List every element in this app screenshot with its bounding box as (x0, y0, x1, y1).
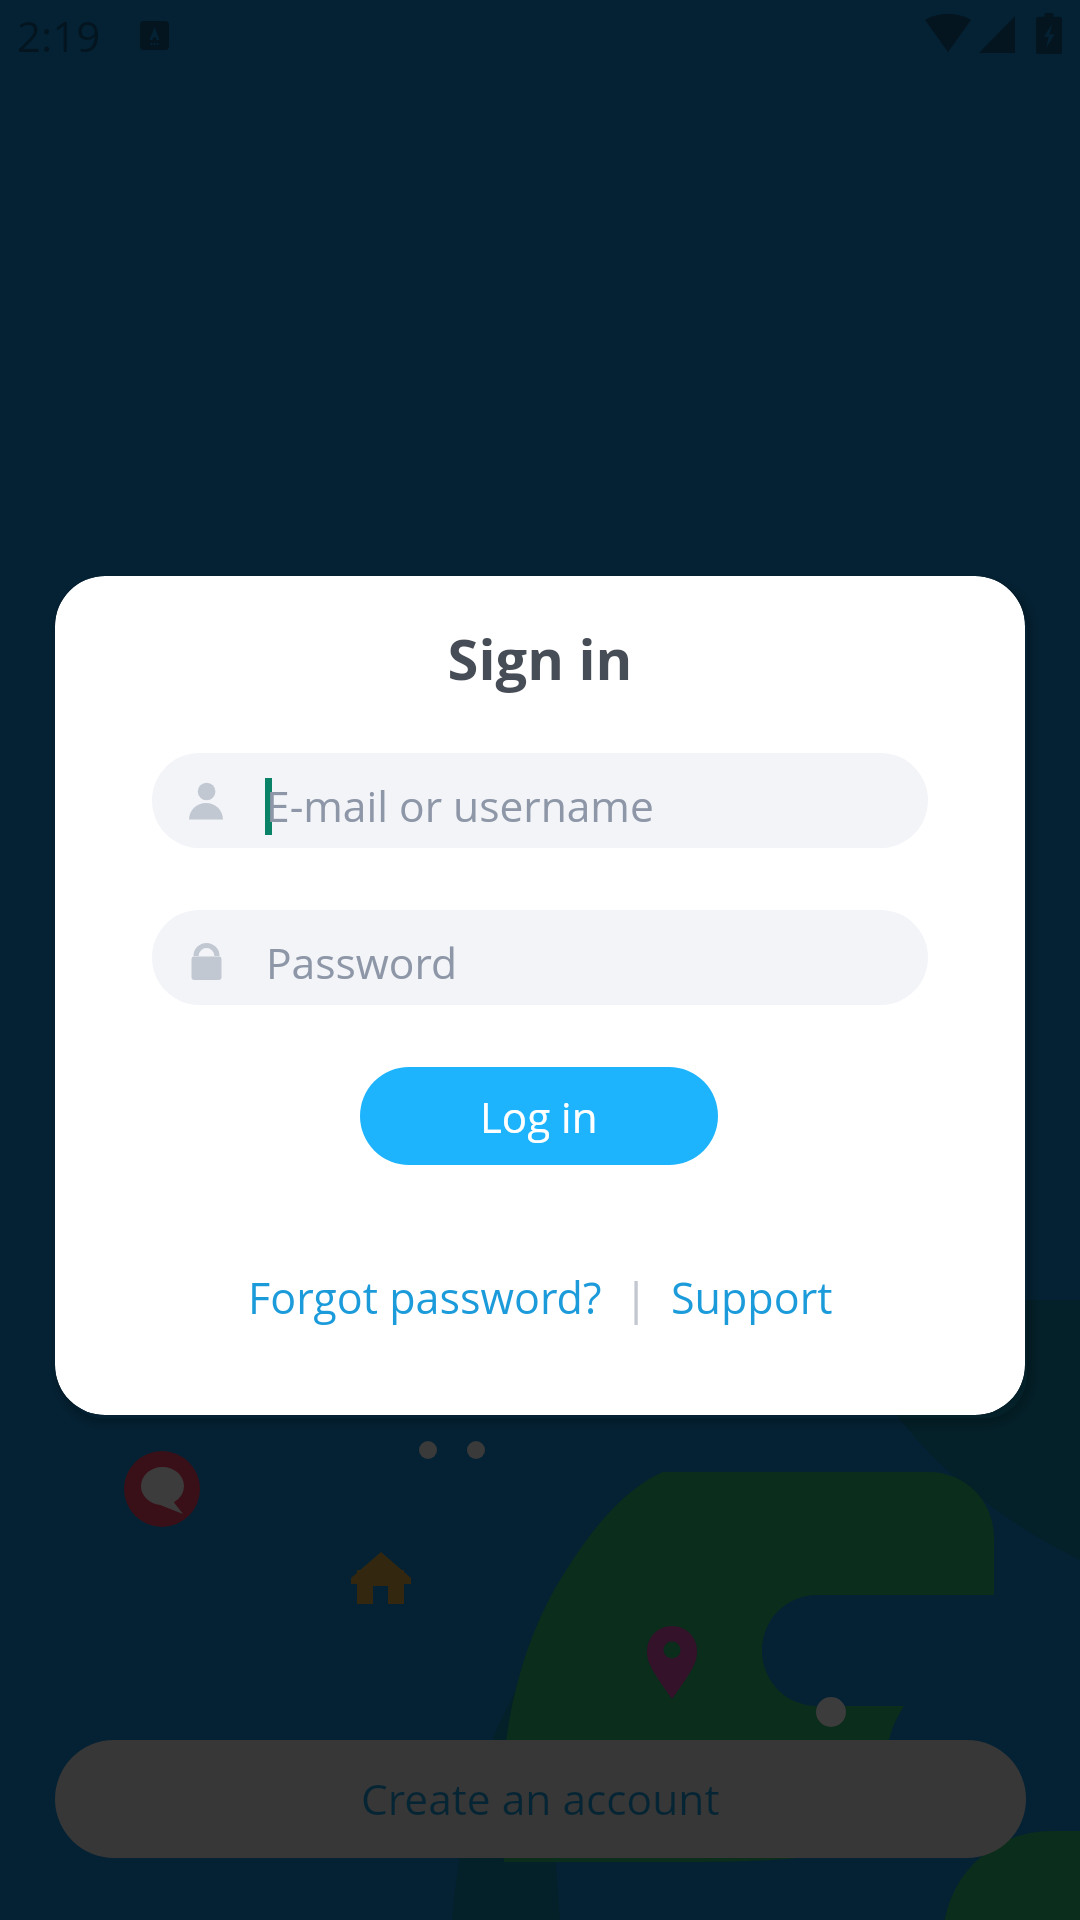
other: App notification (140, 21, 169, 50)
staticText: | (602, 1268, 671, 1327)
other: Account (186, 779, 230, 823)
button[interactable]: Support (671, 1255, 833, 1340)
staticText: 2:19 (17, 7, 101, 64)
staticText: Log in (480, 1088, 598, 1145)
other: Wi-Fi (925, 14, 971, 52)
other: Battery charging (1036, 13, 1062, 54)
other: Mobile signal (979, 16, 1015, 53)
button[interactable]: Log in (360, 1067, 718, 1165)
staticText: Create an account (361, 1770, 720, 1828)
button[interactable]: Password (152, 910, 928, 1005)
staticText: Sign in (55, 620, 1025, 696)
other: Password (186, 936, 230, 980)
button[interactable]: Forgot password? (248, 1255, 602, 1340)
staticText: E-mail or username (266, 777, 654, 835)
button[interactable]: Account (152, 753, 928, 848)
button[interactable]: Create an account (55, 1740, 1026, 1858)
staticText: Forgot password? (248, 1268, 602, 1327)
staticText: Support (671, 1268, 833, 1327)
staticText: Password (266, 934, 458, 992)
